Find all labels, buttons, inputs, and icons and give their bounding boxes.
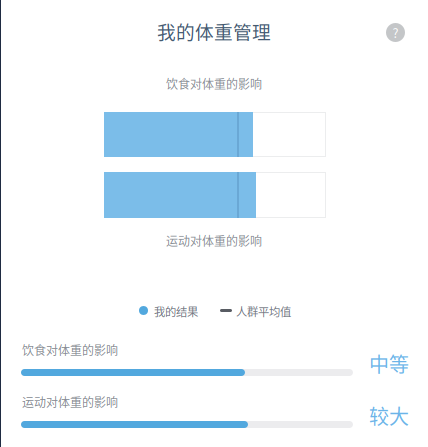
staticText: 运动对体重的影响 (166, 232, 262, 249)
staticText: 饮食对体重的影响 (166, 75, 262, 92)
button[interactable]: 饮食对体重的影响 (0, 341, 428, 393)
button[interactable]: 运动对体重的影响 (0, 393, 428, 445)
staticText: 我的结果 (154, 303, 198, 319)
staticText: 运动对体重的影响 (22, 393, 118, 410)
button[interactable]: Help (386, 23, 405, 42)
staticText: 人群平均值 (236, 303, 291, 319)
staticText: 中等 (369, 349, 409, 378)
staticText: 我的体重管理 (157, 17, 271, 44)
staticText: 较大 (369, 401, 409, 430)
staticText: 饮食对体重的影响 (22, 341, 118, 358)
staticText: ? (392, 23, 398, 42)
